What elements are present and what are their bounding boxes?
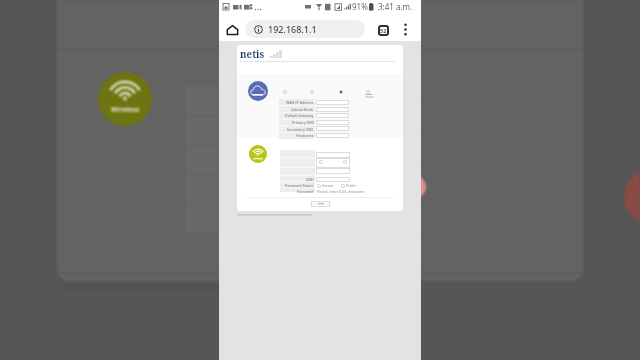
staticText: 192.168.1.1 <box>268 23 317 35</box>
staticText: Subnet Mask <box>291 107 314 112</box>
staticText: Default Gateway <box>285 113 314 118</box>
staticText: Primary DNS <box>292 120 314 125</box>
staticText: 52 <box>380 27 387 34</box>
staticText: netis <box>240 48 265 61</box>
staticText: Secondary DNS <box>287 127 314 132</box>
button[interactable]: Home <box>223 21 241 39</box>
staticText: Public <box>346 183 357 188</box>
staticText: WAN IP Address <box>286 100 314 105</box>
button[interactable]: More options <box>397 21 413 37</box>
staticText: 91% <box>352 1 368 12</box>
button[interactable]: Tabs <box>374 21 392 39</box>
button[interactable]: 192.168.1.1 <box>245 20 365 38</box>
staticText: Please enter 8-63 characters <box>317 189 365 194</box>
button[interactable]: Save <box>311 201 330 207</box>
staticText: SSID <box>306 177 314 182</box>
staticText: Wireless <box>111 105 140 115</box>
staticText: Secure <box>322 183 334 188</box>
staticText: 3:41 a.m. <box>378 1 413 12</box>
staticText: Password Status <box>285 183 314 188</box>
staticText: Password <box>297 189 314 194</box>
staticText: Hostname <box>296 133 314 138</box>
